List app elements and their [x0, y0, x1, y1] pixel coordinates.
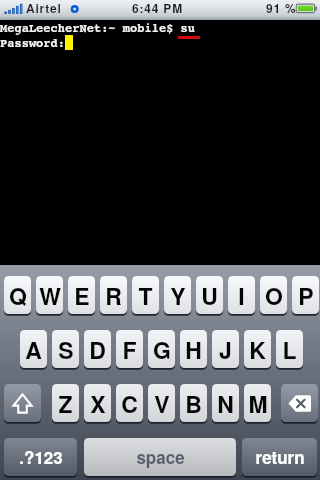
button[interactable]: C	[116, 384, 143, 422]
staticText: X	[90, 387, 106, 420]
button[interactable]: .?123	[4, 438, 77, 476]
staticText: F	[122, 333, 137, 366]
button[interactable]: N	[212, 384, 239, 422]
staticText: S	[58, 333, 74, 366]
staticText: W	[39, 279, 61, 312]
button[interactable]: U	[196, 276, 223, 314]
button[interactable]: B	[180, 384, 207, 422]
staticText: M	[248, 387, 268, 420]
staticText: Z	[58, 387, 73, 420]
button[interactable]: X	[84, 384, 111, 422]
button[interactable]: P	[292, 276, 319, 314]
button[interactable]: H	[180, 330, 207, 368]
staticText: J	[219, 333, 232, 366]
staticText: N	[217, 387, 234, 420]
button[interactable]: Y	[164, 276, 191, 314]
staticText: P	[298, 279, 314, 312]
staticText: return	[255, 445, 305, 469]
staticText: B	[185, 387, 202, 420]
staticText: H	[185, 333, 202, 366]
staticText: Y	[170, 279, 186, 312]
staticText: E	[74, 279, 90, 312]
button[interactable]: T	[132, 276, 159, 314]
staticText: C	[121, 387, 138, 420]
staticText: A	[25, 333, 42, 366]
button[interactable]: K	[244, 330, 271, 368]
button[interactable]: Backspace	[281, 384, 318, 422]
button[interactable]: D	[84, 330, 111, 368]
button[interactable]: space	[84, 438, 236, 476]
button[interactable]: O	[260, 276, 287, 314]
staticText: T	[138, 279, 153, 312]
button[interactable]: E	[68, 276, 95, 314]
staticText: .?123	[19, 445, 63, 469]
staticText: Airtel	[26, 0, 62, 16]
staticText: L	[282, 333, 297, 366]
button[interactable]: M	[244, 384, 271, 422]
button[interactable]: F	[116, 330, 143, 368]
staticText: I	[238, 279, 245, 312]
button[interactable]: L	[276, 330, 303, 368]
button[interactable]: R	[100, 276, 127, 314]
staticText: 6:44 PM	[132, 0, 183, 16]
button[interactable]: W	[36, 276, 63, 314]
staticText: G	[153, 333, 171, 366]
staticText: Q	[9, 279, 27, 312]
staticText: K	[249, 333, 266, 366]
button[interactable]: G	[148, 330, 175, 368]
staticText: V	[154, 387, 170, 420]
button[interactable]: return	[242, 438, 317, 476]
staticText: D	[89, 333, 106, 366]
button[interactable]: A	[20, 330, 47, 368]
staticText: R	[105, 279, 122, 312]
staticText: Password:	[0, 36, 66, 50]
button[interactable]: J	[212, 330, 239, 368]
staticText: space	[136, 445, 185, 469]
staticText: U	[201, 279, 218, 312]
button[interactable]: V	[148, 384, 175, 422]
button[interactable]: I	[228, 276, 255, 314]
button[interactable]: Shift	[4, 384, 41, 422]
staticText: 91 %	[266, 0, 297, 16]
button[interactable]: Q	[4, 276, 31, 314]
button[interactable]: S	[52, 330, 79, 368]
staticText: O	[265, 279, 283, 312]
staticText: MegaLeecherNet:~ mobile$ su	[0, 21, 196, 35]
button[interactable]: Z	[52, 384, 79, 422]
